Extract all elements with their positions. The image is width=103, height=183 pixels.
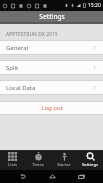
staticText: Lists <box>8 162 17 168</box>
staticText: Local Data <box>6 84 36 92</box>
staticText: Times <box>32 162 44 168</box>
staticText: 15:20 <box>88 2 101 9</box>
button[interactable]: Local Data <box>0 81 103 94</box>
button[interactable]: Times <box>25 150 51 170</box>
staticText: General <box>6 44 29 52</box>
button[interactable]: Settings <box>77 150 103 170</box>
button[interactable]: Recent apps <box>74 170 88 183</box>
button[interactable]: Log out <box>0 102 103 114</box>
staticText: Split <box>6 64 19 72</box>
button[interactable]: General <box>0 41 103 54</box>
button[interactable]: Home <box>45 170 59 183</box>
staticText: Log out <box>41 104 63 112</box>
staticText: Starter <box>57 162 71 168</box>
button[interactable]: Lists <box>0 150 25 170</box>
staticText: Settings <box>39 12 65 21</box>
staticText: Settings <box>82 162 98 168</box>
button[interactable]: Split <box>0 61 103 74</box>
button[interactable]: Starter <box>51 150 77 170</box>
button[interactable]: Back <box>15 170 29 183</box>
staticText: APPTESTRUN DK 2015 <box>6 31 58 38</box>
